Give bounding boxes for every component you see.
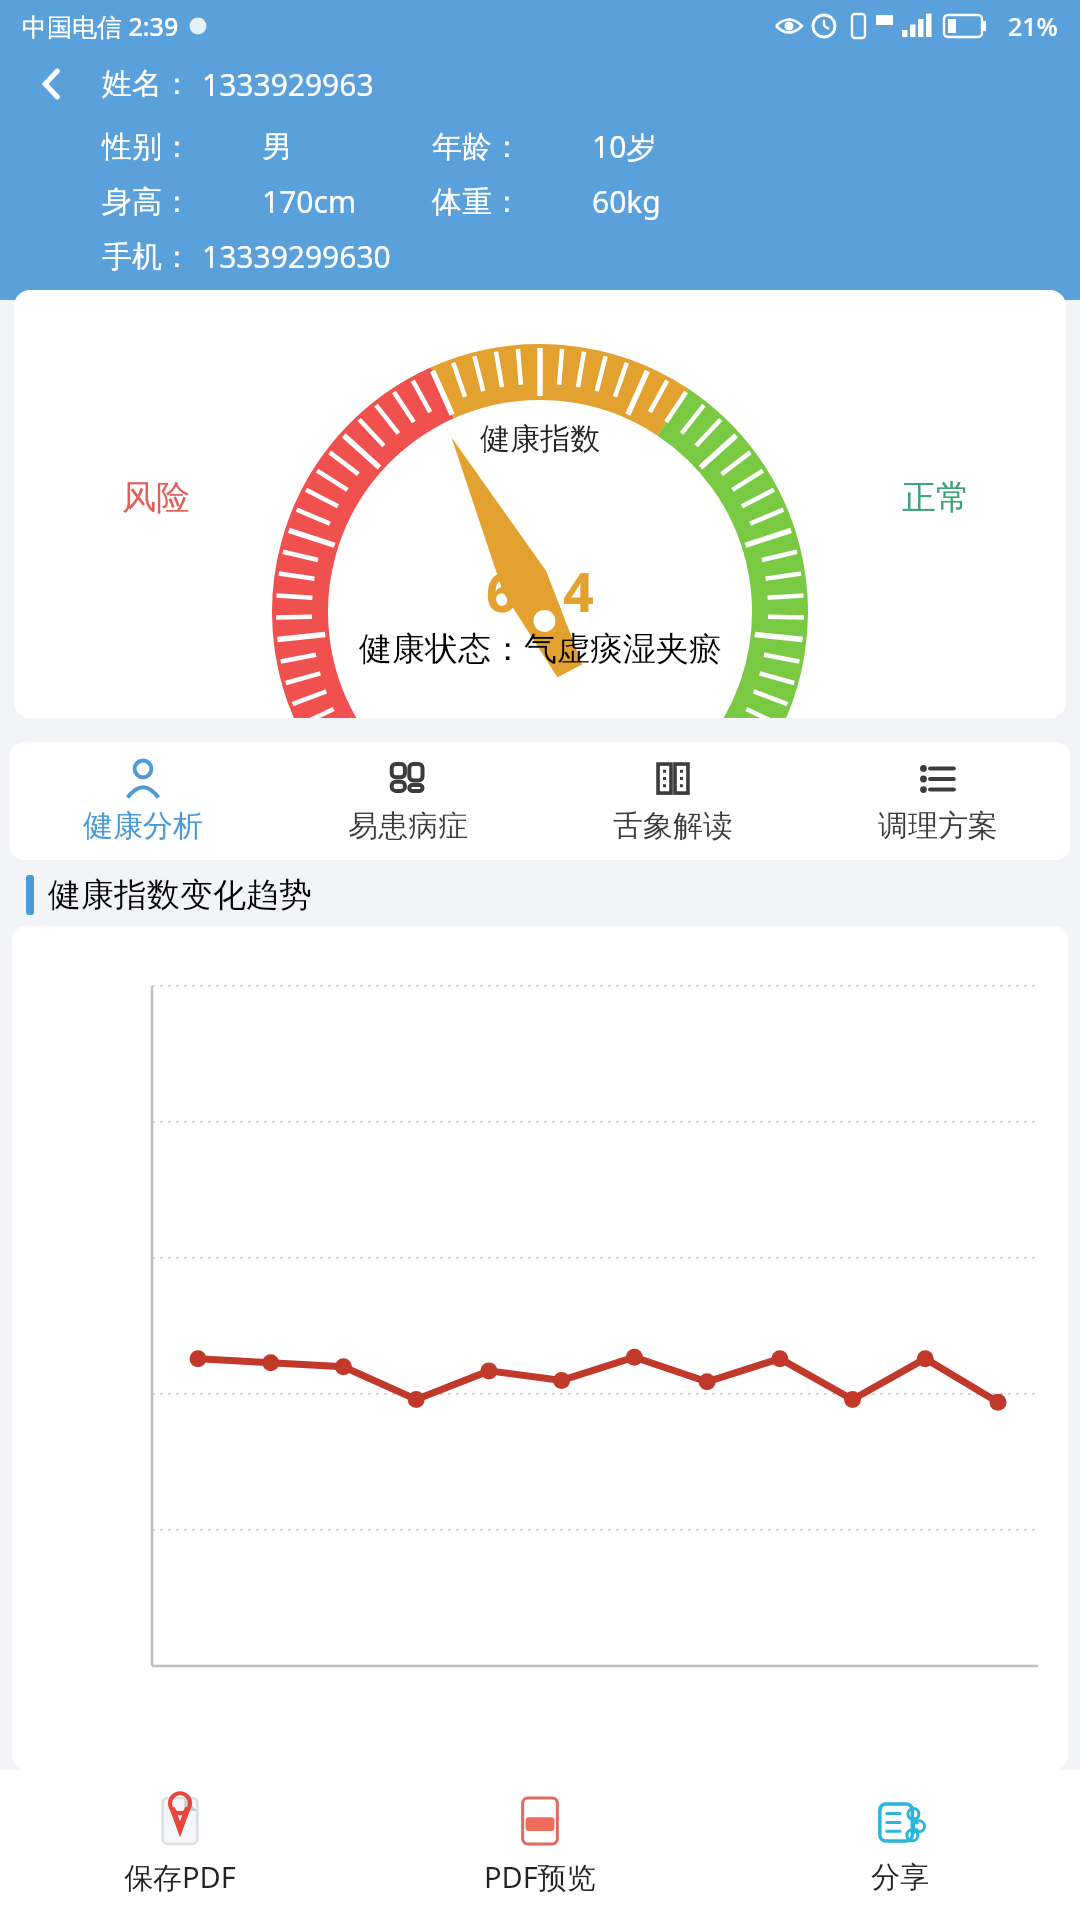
staticText: 正常 <box>902 476 970 519</box>
staticText: 21% <box>1008 9 1058 43</box>
button[interactable]: PDF预览 <box>360 1770 720 1920</box>
staticText: 体重： <box>432 183 522 221</box>
staticText: 健康指数变化趋势 <box>48 874 312 916</box>
staticText: 分享 <box>871 1859 929 1896</box>
button[interactable]: 健康分析 <box>10 742 275 860</box>
staticText: 1333929963 <box>202 64 374 105</box>
staticText: 69.4 <box>486 554 594 628</box>
staticText: 年龄： <box>432 128 522 166</box>
staticText: 中国电信 2:39 <box>22 9 179 43</box>
staticText: 健康状态：气虚痰湿夹瘀 <box>359 628 722 670</box>
button[interactable]: 易患病症 <box>275 742 540 860</box>
staticText: 10岁 <box>592 126 657 167</box>
button[interactable]: 保存PDF <box>0 1770 360 1920</box>
button[interactable]: 调理方案 <box>805 742 1070 860</box>
staticText: 健康指数 <box>480 420 600 458</box>
staticText: PDF预览 <box>484 1857 596 1897</box>
staticText: 姓名： <box>102 65 192 103</box>
staticText: 性别： <box>102 128 192 166</box>
staticText: 保存PDF <box>124 1857 236 1897</box>
staticText: 易患病症 <box>348 807 468 845</box>
button[interactable]: 舌象解读 <box>540 742 805 860</box>
staticText: 手机： <box>102 238 192 276</box>
staticText: 舌象解读 <box>613 807 733 845</box>
staticText: 调理方案 <box>878 807 998 845</box>
staticText: 13339299630 <box>202 236 391 277</box>
staticText: 风险 <box>122 476 190 519</box>
staticText: 男 <box>262 128 292 166</box>
staticText: 健康分析 <box>83 807 203 845</box>
button[interactable]: Back <box>24 56 80 112</box>
staticText: 170cm <box>262 181 356 222</box>
staticText: 60kg <box>592 181 661 222</box>
button[interactable]: 分享 <box>720 1770 1080 1920</box>
staticText: 身高： <box>102 183 192 221</box>
